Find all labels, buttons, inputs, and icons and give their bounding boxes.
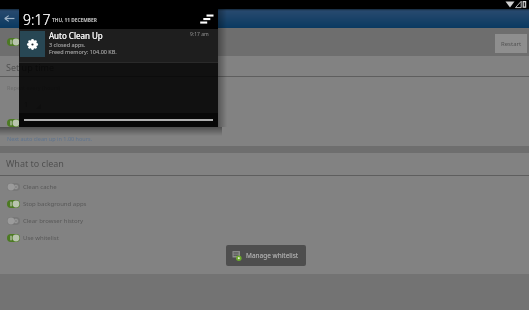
staticText: Enable auto clean up [24,37,93,47]
button[interactable]: Notify me [0,116,529,130]
staticText: 9:17 am [190,31,209,38]
staticText: Auto Clean Up [49,30,103,41]
staticText: Clear browser history [23,217,84,225]
staticText: Clean cache [23,183,57,191]
button[interactable]: Restart [495,34,527,53]
staticText: Notify me [24,118,57,128]
button[interactable]: Manage whitelist [226,245,306,266]
staticText: Next auto clean up in 1.00 hours. [7,135,93,142]
staticText: THU, 11 DECEMBER [52,17,97,24]
button[interactable]: Stop background apps [0,195,529,212]
button[interactable]: Use whitelist [0,229,529,246]
button[interactable]: Enable auto clean up [0,28,529,56]
staticText: Manage whitelist [246,251,299,260]
staticText: 9:17 [23,10,51,29]
staticText: Repeat every (hours) [7,84,61,91]
button[interactable]: Clear browser history [0,212,529,229]
button[interactable]: Quick settings [200,14,214,26]
staticText: Stop background apps [23,200,87,208]
staticText: 3 closed apps. [49,41,86,48]
button[interactable]: Back [3,12,16,25]
staticText: Use whitelist [23,234,59,242]
button[interactable]: Auto Clean Up [19,29,218,62]
staticText: Freed memory: 104.00 KB. [49,48,117,55]
staticText: Set up time [6,61,55,73]
staticText: What to clean [6,157,64,169]
other: Status icons [503,0,527,9]
staticText: Restart [501,40,522,48]
